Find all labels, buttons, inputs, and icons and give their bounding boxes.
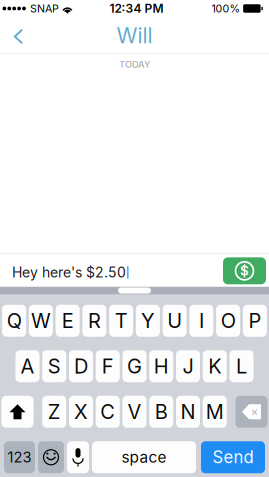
staticText: 12:34 PM — [109, 1, 163, 16]
button[interactable]: I — [189, 305, 213, 337]
button[interactable]: Shift — [1, 396, 33, 428]
button[interactable]: Send — [201, 441, 265, 473]
button[interactable]: J — [176, 350, 200, 382]
staticText: S — [48, 354, 61, 378]
staticText: F — [102, 354, 114, 378]
button[interactable]: Delete — [235, 396, 267, 428]
staticText: Q — [7, 309, 22, 333]
staticText: C — [100, 400, 115, 424]
button[interactable]: Q — [2, 305, 26, 337]
button[interactable]: T — [109, 305, 133, 337]
staticText: Send — [212, 447, 253, 467]
staticText: Hey here's $2.50 — [12, 264, 126, 281]
button[interactable]: Y — [136, 305, 160, 337]
button[interactable]: 123 — [4, 441, 35, 473]
button[interactable]: D — [69, 350, 93, 382]
staticText: Z — [48, 400, 61, 424]
button[interactable]: Dictate — [67, 441, 89, 473]
staticText: D — [74, 354, 88, 378]
staticText: Will — [116, 23, 152, 48]
staticText: A — [20, 354, 34, 378]
button[interactable]: X — [69, 396, 93, 428]
button[interactable]: M — [203, 396, 227, 428]
staticText: × — [250, 404, 258, 418]
button[interactable]: C — [96, 396, 120, 428]
staticText: R — [88, 309, 101, 333]
staticText: H — [154, 354, 169, 378]
button[interactable]: U — [163, 305, 187, 337]
button[interactable]: K — [203, 350, 227, 382]
staticText: L — [236, 354, 247, 378]
button[interactable]: E — [56, 305, 80, 337]
button[interactable]: Send money — [223, 259, 266, 286]
staticText: X — [74, 400, 88, 424]
button[interactable]: Back — [0, 18, 39, 52]
staticText: U — [167, 309, 182, 333]
button[interactable]: P — [243, 305, 267, 337]
staticText: Y — [141, 309, 155, 333]
staticText: J — [182, 354, 193, 378]
button[interactable]: A — [15, 350, 39, 382]
staticText: N — [180, 400, 195, 424]
button[interactable]: S — [42, 350, 66, 382]
button[interactable]: F — [96, 350, 120, 382]
staticText: SNAP — [30, 2, 59, 15]
staticText: V — [127, 400, 141, 424]
staticText: space — [121, 448, 166, 467]
staticText: 100% — [211, 2, 239, 15]
staticText: K — [208, 354, 221, 378]
button[interactable]: Emoji — [38, 441, 64, 473]
button[interactable]: W — [29, 305, 53, 337]
staticText: I — [199, 309, 204, 333]
staticText: B — [155, 400, 168, 424]
staticText: 123 — [7, 448, 31, 466]
button[interactable]: B — [149, 396, 173, 428]
button[interactable]: space — [92, 441, 196, 473]
button[interactable]: L — [229, 350, 253, 382]
staticText: E — [62, 309, 74, 333]
button[interactable]: H — [149, 350, 173, 382]
staticText: TODAY — [119, 59, 150, 70]
staticText: O — [221, 309, 236, 333]
staticText: T — [115, 309, 128, 333]
staticText: W — [31, 309, 51, 333]
staticText: G — [127, 354, 142, 378]
button[interactable]: Z — [42, 396, 66, 428]
staticText: M — [206, 400, 224, 424]
button[interactable]: N — [176, 396, 200, 428]
button[interactable]: V — [122, 396, 146, 428]
button[interactable]: O — [216, 305, 240, 337]
button[interactable]: R — [82, 305, 106, 337]
staticText: S — [240, 262, 249, 279]
button[interactable]: G — [122, 350, 146, 382]
staticText: P — [248, 309, 261, 333]
